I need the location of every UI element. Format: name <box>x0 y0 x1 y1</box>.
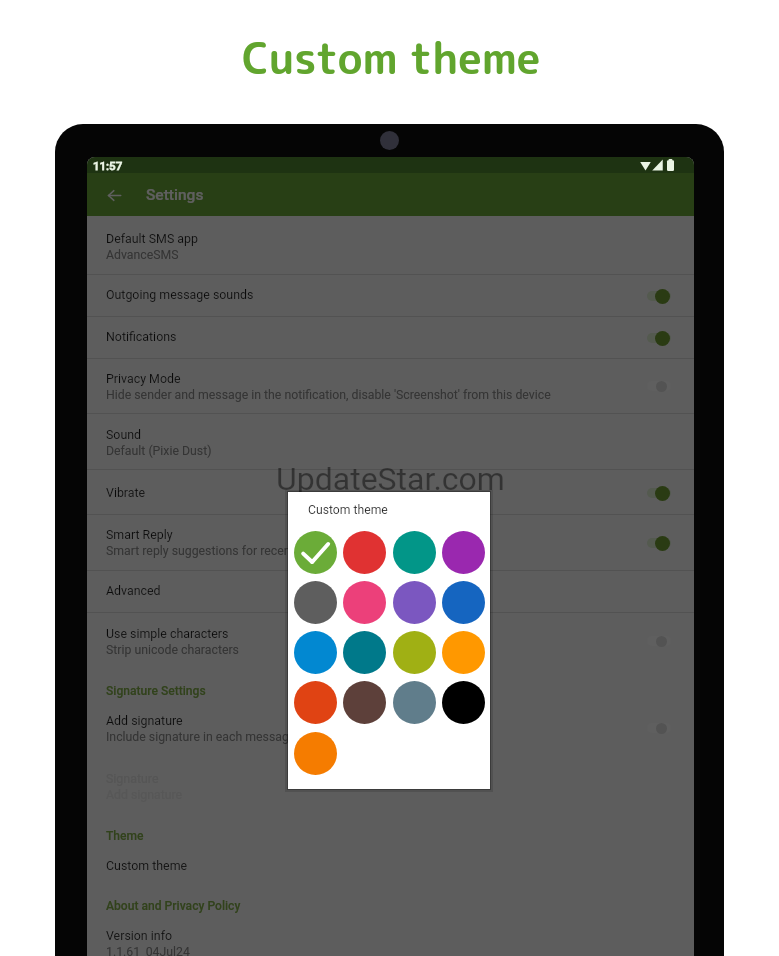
button[interactable]: Sound <box>87 414 694 470</box>
staticText: Default (Pixie Dust) <box>106 444 212 458</box>
button[interactable]: Privacy Mode <box>87 359 694 413</box>
button[interactable]: Switch on <box>644 284 682 308</box>
staticText: Signature Settings <box>106 684 206 698</box>
button[interactable]: Theme colour 4 <box>442 531 485 574</box>
button[interactable]: Version info <box>87 917 694 956</box>
staticText: Custom theme <box>242 28 541 88</box>
staticText: Smart reply suggestions for recent messa… <box>106 544 355 558</box>
button[interactable]: Theme colour 5 <box>294 581 337 624</box>
button[interactable]: Theme colour 10 <box>343 631 386 674</box>
button[interactable]: Use simple characters <box>87 613 694 669</box>
button[interactable]: Advanced <box>87 571 694 613</box>
button[interactable]: Theme colour 17 <box>294 732 337 775</box>
button[interactable]: Add signature <box>87 703 694 753</box>
button[interactable]: Theme colour 11 <box>393 631 436 674</box>
button[interactable]: Theme colour 2 <box>343 531 386 574</box>
staticText: Custom theme <box>308 503 388 517</box>
button[interactable]: Theme colour 14 <box>343 681 386 724</box>
button[interactable]: Switch on <box>644 326 682 350</box>
button[interactable]: Signature <box>87 762 694 816</box>
button[interactable]: Theme colour 6 <box>343 581 386 624</box>
staticText: Smart Reply <box>106 527 173 542</box>
button[interactable]: Theme colour 1 <box>294 531 337 574</box>
button[interactable]: Notifications <box>87 317 694 358</box>
staticText: Notifications <box>106 329 177 344</box>
button[interactable]: Theme colour 9 <box>294 631 337 674</box>
staticText: 1.1.61_04Jul24 <box>106 945 190 956</box>
button[interactable]: Theme colour 15 <box>393 681 436 724</box>
button[interactable]: Switch on <box>644 481 682 505</box>
staticText: Custom theme <box>106 858 188 873</box>
staticText: UpdateStar.com <box>276 460 505 498</box>
button[interactable]: Theme colour 16 <box>442 681 485 724</box>
button[interactable]: Theme colour 8 <box>442 581 485 624</box>
staticText: AdvanceSMS <box>106 248 179 262</box>
button[interactable]: Switch on <box>644 531 682 555</box>
button[interactable]: Switch off <box>644 716 682 740</box>
button[interactable]: Custom theme <box>87 847 694 887</box>
staticText: Version info <box>106 928 173 943</box>
staticText: Privacy Mode <box>106 371 181 386</box>
staticText: Theme <box>106 829 144 843</box>
staticText: Vibrate <box>106 485 146 500</box>
button[interactable]: Switch off <box>644 374 682 398</box>
staticText: Add signature <box>106 713 183 728</box>
button[interactable]: Theme colour 13 <box>294 681 337 724</box>
staticText: Outgoing message sounds <box>106 287 254 302</box>
button[interactable]: Theme colour 3 <box>393 531 436 574</box>
staticText: Default SMS app <box>106 231 198 246</box>
staticText: 11:57 <box>93 159 123 172</box>
staticText: Use simple characters <box>106 626 229 641</box>
staticText: Advanced <box>106 583 161 598</box>
button[interactable]: Outgoing message sounds <box>87 275 694 316</box>
staticText: About and Privacy Policy <box>106 899 241 913</box>
button[interactable]: Theme colour 12 <box>442 631 485 674</box>
staticText: Include signature in each message <box>106 730 296 744</box>
staticText: Settings <box>146 186 204 204</box>
button[interactable]: Default SMS app <box>87 217 694 274</box>
button[interactable]: Back <box>97 178 131 212</box>
staticText: Sound <box>106 427 142 442</box>
button[interactable]: Theme colour 7 <box>393 581 436 624</box>
staticText: Hide sender and message in the notificat… <box>106 388 551 402</box>
button[interactable]: Smart Reply <box>87 515 694 570</box>
staticText: Strip unicode characters <box>106 643 239 657</box>
button[interactable]: Switch off <box>644 629 682 653</box>
button[interactable]: Vibrate <box>87 470 694 515</box>
